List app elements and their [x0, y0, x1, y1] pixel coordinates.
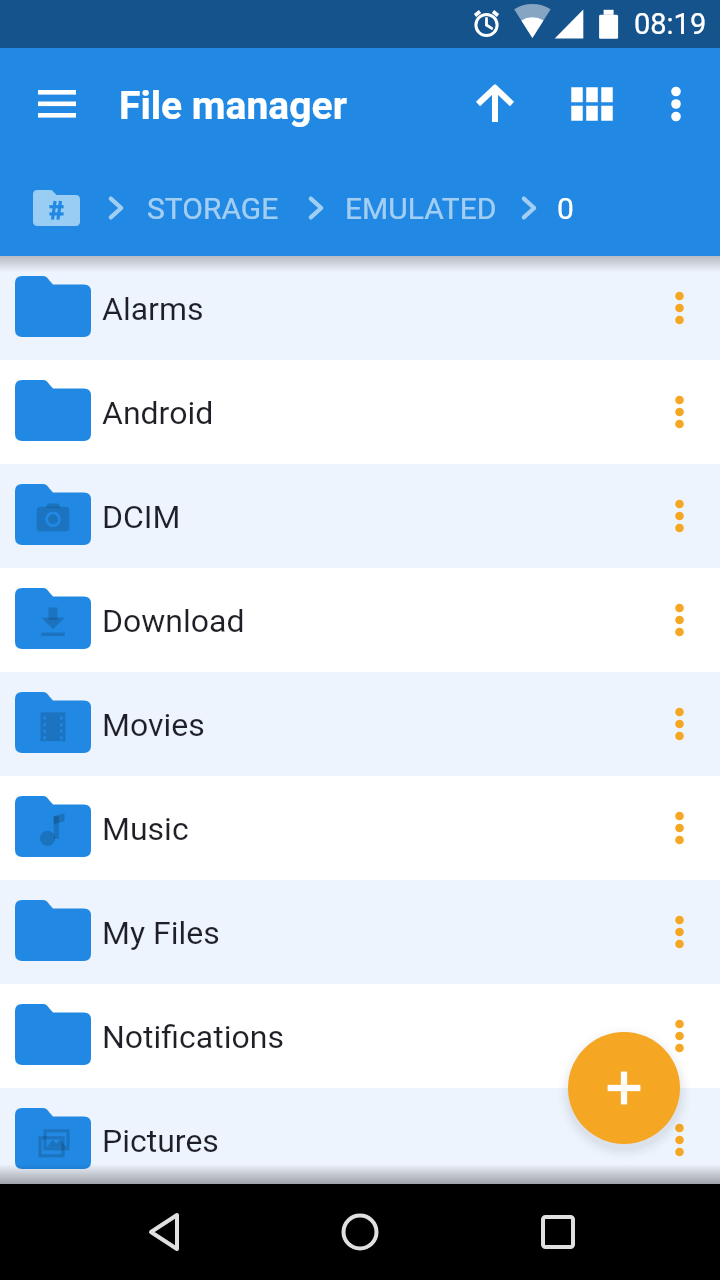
button[interactable]: Grid view — [552, 72, 632, 136]
button[interactable]: 0 — [557, 160, 574, 256]
button[interactable]: Add — [568, 1032, 680, 1144]
staticText: Notifications — [102, 1018, 284, 1056]
staticText: EMULATED — [345, 191, 497, 226]
staticText: Android — [102, 394, 214, 432]
button[interactable]: Item options — [640, 360, 720, 464]
button[interactable]: Item options — [640, 880, 720, 984]
button[interactable]: Back — [120, 1184, 210, 1280]
button[interactable]: Alarms — [0, 256, 720, 360]
button[interactable]: Pictures — [0, 1088, 720, 1192]
staticText: Pictures — [102, 1122, 219, 1160]
button[interactable]: Download — [0, 568, 720, 672]
staticText: 08:19 — [634, 7, 707, 41]
staticText: My Files — [102, 914, 220, 952]
button[interactable]: Item options — [640, 464, 720, 568]
button[interactable]: Android — [0, 360, 720, 464]
button[interactable]: STORAGE — [147, 160, 279, 256]
staticText: File manager — [119, 83, 347, 129]
staticText: DCIM — [102, 498, 181, 536]
button[interactable]: Go up — [455, 72, 535, 136]
button[interactable]: Root folder — [23, 180, 90, 236]
button[interactable]: Menu — [20, 76, 92, 132]
button[interactable]: Item options — [640, 1088, 720, 1192]
staticText: STORAGE — [147, 191, 279, 226]
button[interactable]: Music — [0, 776, 720, 880]
staticText: Movies — [102, 706, 205, 744]
button[interactable]: DCIM — [0, 464, 720, 568]
button[interactable]: Movies — [0, 672, 720, 776]
button[interactable]: Home — [315, 1184, 405, 1280]
button[interactable]: My Files — [0, 880, 720, 984]
button[interactable]: Item options — [640, 984, 720, 1088]
staticText: 0 — [557, 191, 574, 226]
button[interactable]: Item options — [640, 776, 720, 880]
staticText: Music — [102, 810, 189, 848]
button[interactable]: More options — [640, 72, 712, 136]
button[interactable]: Item options — [640, 672, 720, 776]
button[interactable]: Notifications — [0, 984, 720, 1088]
staticText: Alarms — [102, 290, 204, 328]
button[interactable]: Recents — [513, 1184, 603, 1280]
button[interactable]: Item options — [640, 568, 720, 672]
button[interactable]: EMULATED — [345, 160, 497, 256]
button[interactable]: Item options — [640, 256, 720, 360]
staticText: Download — [102, 602, 245, 640]
